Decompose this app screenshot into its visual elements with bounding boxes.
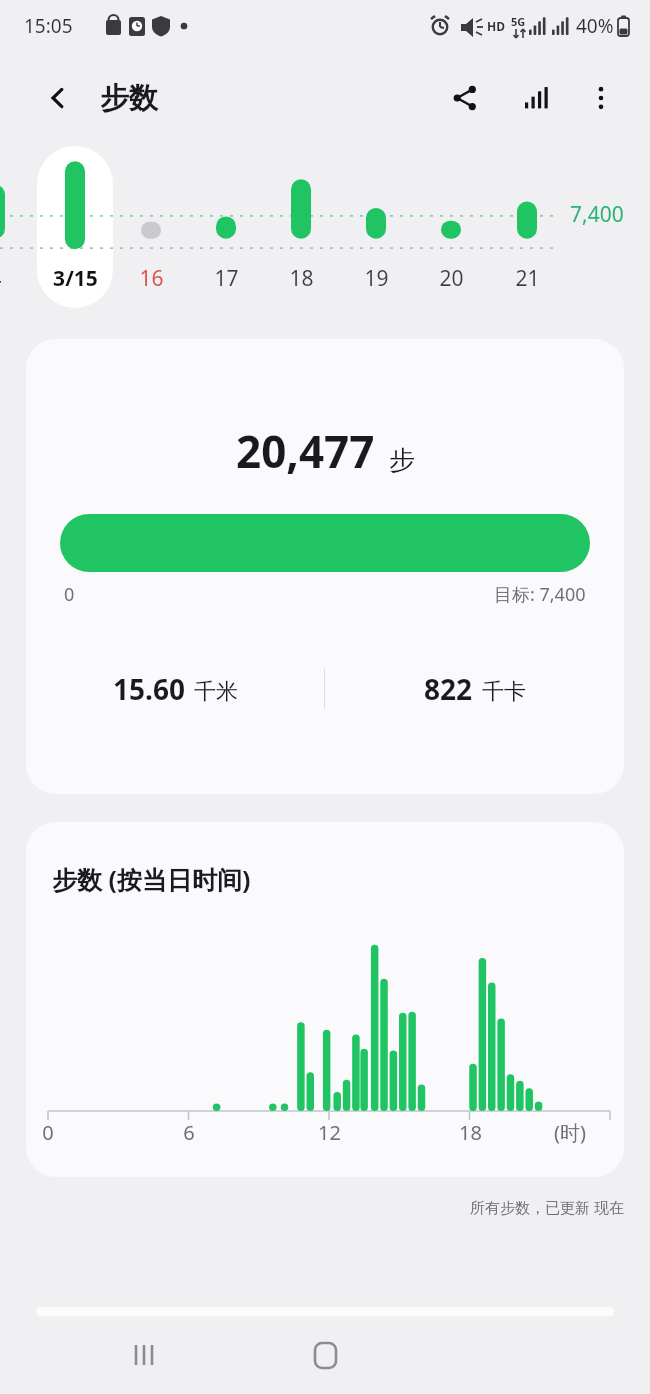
staticText: HD bbox=[487, 18, 505, 34]
button[interactable]: Recents bbox=[113, 1323, 177, 1387]
staticText: 千卡 bbox=[482, 678, 526, 706]
staticText: 12 bbox=[318, 1119, 341, 1146]
staticText: 所有步数，已更新 现在 bbox=[0, 1197, 624, 1217]
staticText: 40% bbox=[576, 13, 614, 39]
staticText: 17 bbox=[214, 264, 239, 293]
button[interactable]: 4 bbox=[0, 264, 25, 293]
staticText: 目标: 7,400 bbox=[494, 582, 586, 607]
button[interactable]: 19 bbox=[346, 264, 406, 293]
staticText: 6 bbox=[183, 1119, 195, 1146]
button[interactable]: 20 bbox=[421, 264, 481, 293]
staticText: 18 bbox=[459, 1119, 482, 1146]
button[interactable]: 16 bbox=[121, 264, 181, 293]
staticText: 5G bbox=[511, 14, 526, 29]
button[interactable]: 步数 (按当日时间) bbox=[26, 822, 624, 1177]
button[interactable]: Share bbox=[438, 71, 492, 125]
staticText: 20,477 bbox=[236, 421, 375, 481]
staticText: 步数 (按当日时间) bbox=[52, 862, 251, 896]
staticText: 15:05 bbox=[24, 13, 73, 39]
button[interactable]: Chart bbox=[508, 71, 562, 125]
button[interactable]: 20,477 bbox=[26, 339, 624, 794]
button[interactable]: 18 bbox=[271, 264, 331, 293]
staticText: 822 bbox=[424, 670, 473, 708]
button[interactable]: Home bbox=[293, 1323, 357, 1387]
staticText: 16 bbox=[139, 264, 164, 293]
staticText: 19 bbox=[364, 264, 389, 293]
button[interactable]: Back bbox=[34, 74, 82, 122]
staticText: 千米 bbox=[194, 678, 238, 706]
button[interactable] bbox=[37, 146, 113, 308]
button[interactable]: 21 bbox=[497, 264, 557, 293]
staticText: 0 bbox=[64, 582, 75, 607]
staticText: 15.60 bbox=[113, 670, 185, 708]
button[interactable]: 3/15 bbox=[45, 264, 105, 293]
staticText: 步 bbox=[389, 444, 415, 477]
staticText: 20 bbox=[439, 264, 464, 293]
staticText: 18 bbox=[289, 264, 314, 293]
button[interactable]: 17 bbox=[196, 264, 256, 293]
button[interactable]: More options bbox=[574, 71, 628, 125]
staticText: 21 bbox=[515, 264, 540, 293]
staticText: 4 bbox=[0, 264, 2, 293]
staticText: 7,400 bbox=[570, 200, 624, 229]
staticText: 3/15 bbox=[53, 264, 98, 293]
staticText: 步数 bbox=[100, 80, 158, 117]
staticText: (时) bbox=[554, 1119, 586, 1146]
staticText: 0 bbox=[42, 1119, 54, 1146]
